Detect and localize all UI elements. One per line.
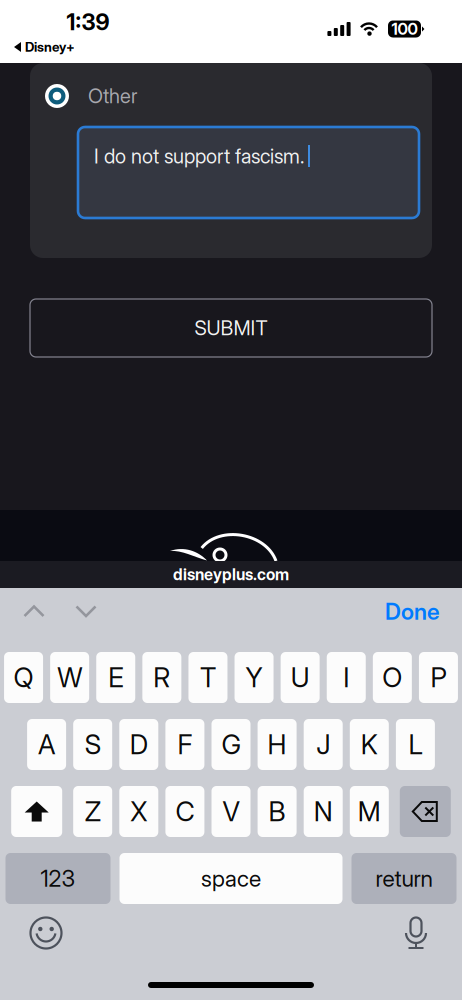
staticText: A [38, 728, 55, 761]
staticText: C [175, 795, 194, 828]
button[interactable]: H [258, 719, 297, 770]
staticText: I [343, 661, 349, 694]
staticText: H [268, 728, 287, 761]
staticText: return [375, 865, 432, 892]
staticText: O [382, 661, 402, 694]
button[interactable]: Dictation [393, 910, 439, 956]
button[interactable]: Next field [60, 588, 112, 635]
button[interactable]: disneyplus.com [0, 561, 462, 588]
staticText: N [314, 795, 333, 828]
button[interactable]: I do not support fascism. [78, 127, 419, 218]
staticText: K [361, 728, 378, 761]
button[interactable]: I [327, 652, 366, 703]
staticText: J [316, 728, 330, 761]
button[interactable]: Other option selected [45, 84, 69, 108]
button[interactable]: T [188, 652, 227, 703]
button[interactable]: X [119, 786, 158, 837]
button[interactable]: P [419, 652, 458, 703]
staticText: disneyplus.com [173, 565, 289, 584]
button[interactable]: U [281, 652, 320, 703]
staticText: Z [85, 795, 101, 828]
button[interactable]: M [350, 786, 389, 837]
staticText: 100 [391, 19, 417, 39]
button[interactable]: Emoji [23, 910, 69, 956]
staticText: S [85, 728, 101, 761]
button[interactable]: return [351, 853, 456, 904]
staticText: 123 [40, 865, 75, 892]
staticText: 1:39 [66, 8, 109, 36]
staticText: W [57, 661, 82, 694]
button[interactable]: E [96, 652, 135, 703]
button[interactable]: Previous field [8, 588, 60, 635]
staticText: B [269, 795, 286, 828]
staticText: V [222, 795, 239, 828]
button[interactable]: D [119, 719, 158, 770]
staticText: R [153, 661, 170, 694]
staticText: Disney+ [25, 39, 75, 55]
staticText: Other [88, 84, 137, 108]
button[interactable]: K [350, 719, 389, 770]
staticText: L [408, 728, 422, 761]
button[interactable]: N [304, 786, 343, 837]
staticText: F [177, 728, 192, 761]
button[interactable]: Y [235, 652, 274, 703]
button[interactable]: Done [369, 588, 456, 635]
button[interactable]: SUBMIT [30, 299, 432, 357]
staticText: Done [385, 598, 440, 625]
button[interactable]: S [73, 719, 112, 770]
staticText: D [130, 728, 148, 761]
button[interactable]: J [304, 719, 343, 770]
button[interactable]: O [373, 652, 412, 703]
button[interactable]: Shift [11, 786, 62, 837]
button[interactable]: W [50, 652, 89, 703]
staticText: G [221, 728, 240, 761]
button[interactable]: Delete [400, 786, 451, 837]
button[interactable]: F [165, 719, 204, 770]
staticText: P [430, 661, 446, 694]
button[interactable]: G [211, 719, 250, 770]
button[interactable]: space [119, 853, 342, 904]
button[interactable]: Z [73, 786, 112, 837]
staticText: Q [14, 661, 34, 694]
staticText: I do not support fascism. [94, 144, 304, 168]
button[interactable]: B [258, 786, 297, 837]
staticText: T [200, 661, 216, 694]
button[interactable]: Q [4, 652, 43, 703]
staticText: M [358, 795, 381, 828]
staticText: E [108, 661, 123, 694]
button[interactable]: L [396, 719, 435, 770]
button[interactable]: C [165, 786, 204, 837]
button[interactable]: Disney+ [0, 36, 89, 58]
staticText: SUBMIT [194, 316, 267, 340]
button[interactable]: 123 [5, 853, 110, 904]
button[interactable]: V [211, 786, 250, 837]
button[interactable]: A [27, 719, 66, 770]
button[interactable]: R [142, 652, 181, 703]
staticText: space [201, 865, 261, 892]
staticText: U [291, 661, 310, 694]
staticText: X [130, 795, 147, 828]
staticText: Y [246, 661, 263, 694]
